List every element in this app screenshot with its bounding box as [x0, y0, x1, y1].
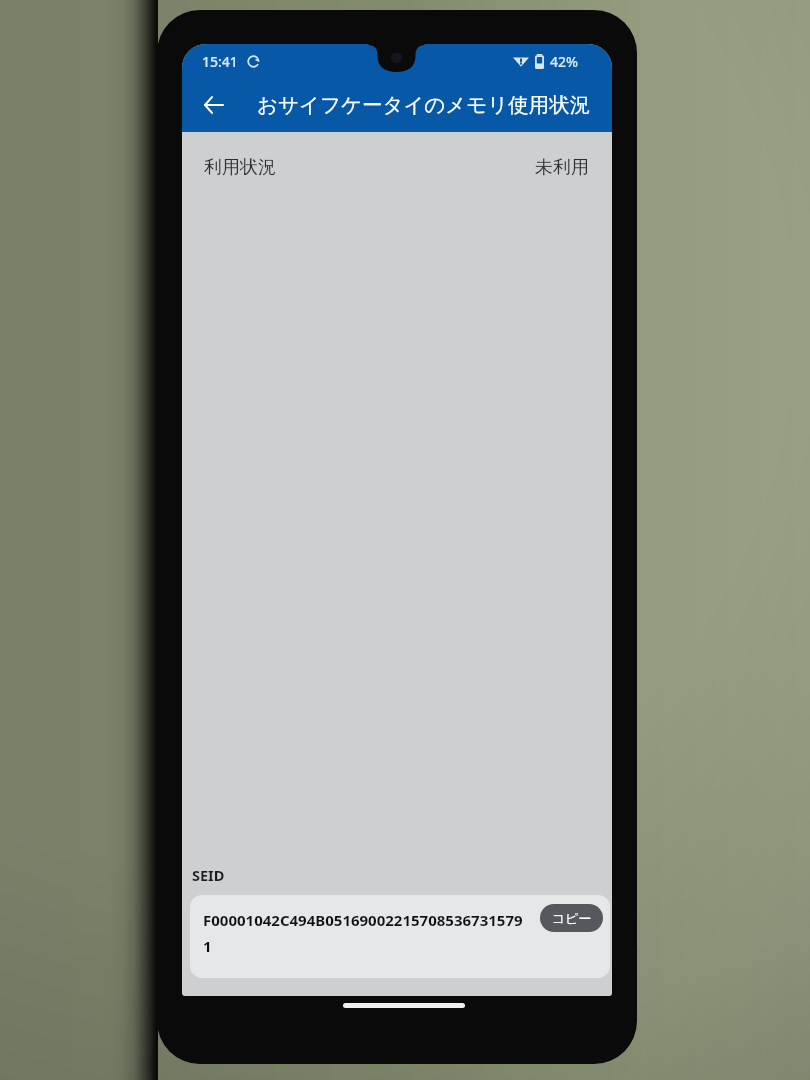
- staticText: 利用状況: [204, 156, 276, 179]
- staticText: 未利用: [535, 156, 589, 179]
- staticText: 15:41: [202, 52, 238, 71]
- staticText: SEID: [192, 865, 225, 885]
- staticText: コピー: [552, 910, 592, 926]
- staticText: 42%: [550, 52, 578, 71]
- staticText: おサイフケータイのメモリ使用状況: [257, 92, 591, 118]
- button[interactable]: 利用状況: [182, 132, 612, 202]
- button[interactable]: Back: [182, 78, 244, 132]
- button[interactable]: コピー: [540, 904, 603, 932]
- staticText: F00001042C494B051690022157085367315791: [203, 910, 525, 957]
